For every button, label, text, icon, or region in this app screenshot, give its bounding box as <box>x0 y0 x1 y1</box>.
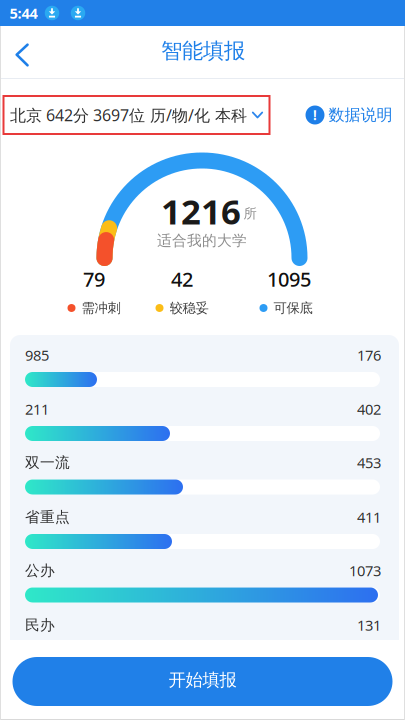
staticText: 可保底 <box>273 300 312 316</box>
staticText: 所 <box>243 205 256 222</box>
staticText: 985 <box>25 345 49 365</box>
staticText: 开始填报 <box>168 669 236 691</box>
staticText: 民办 <box>25 616 55 634</box>
button[interactable]: ! <box>305 105 392 125</box>
button[interactable]: Back <box>7 35 37 74</box>
staticText: 需冲刺 <box>81 300 120 316</box>
staticText: 北京 642分 3697位 历/物/化 本科 <box>10 104 247 126</box>
staticText: 411 <box>357 507 381 527</box>
staticText: 5:44 <box>9 3 37 23</box>
staticText: 42 <box>171 266 193 292</box>
staticText: ! <box>313 106 317 124</box>
staticText: 双一流 <box>25 453 70 471</box>
staticText: 1216 <box>161 188 241 234</box>
staticText: 智能填报 <box>161 38 245 64</box>
button[interactable]: 北京 642分 3697位 历/物/化 本科 <box>3 96 269 134</box>
staticText: 1095 <box>267 266 311 292</box>
staticText: 176 <box>357 345 381 365</box>
staticText: 省重点 <box>25 508 70 526</box>
button[interactable]: 开始填报 <box>12 657 392 706</box>
staticText: 1073 <box>349 561 381 580</box>
staticText: 453 <box>357 453 381 472</box>
staticText: 适合我的大学 <box>157 231 247 249</box>
staticText: 131 <box>357 615 381 635</box>
staticText: 211 <box>25 399 49 419</box>
staticText: 79 <box>83 266 105 292</box>
staticText: 公办 <box>25 561 55 579</box>
staticText: 402 <box>357 399 381 419</box>
staticText: 较稳妥 <box>169 300 208 316</box>
staticText: 数据说明 <box>328 105 392 125</box>
